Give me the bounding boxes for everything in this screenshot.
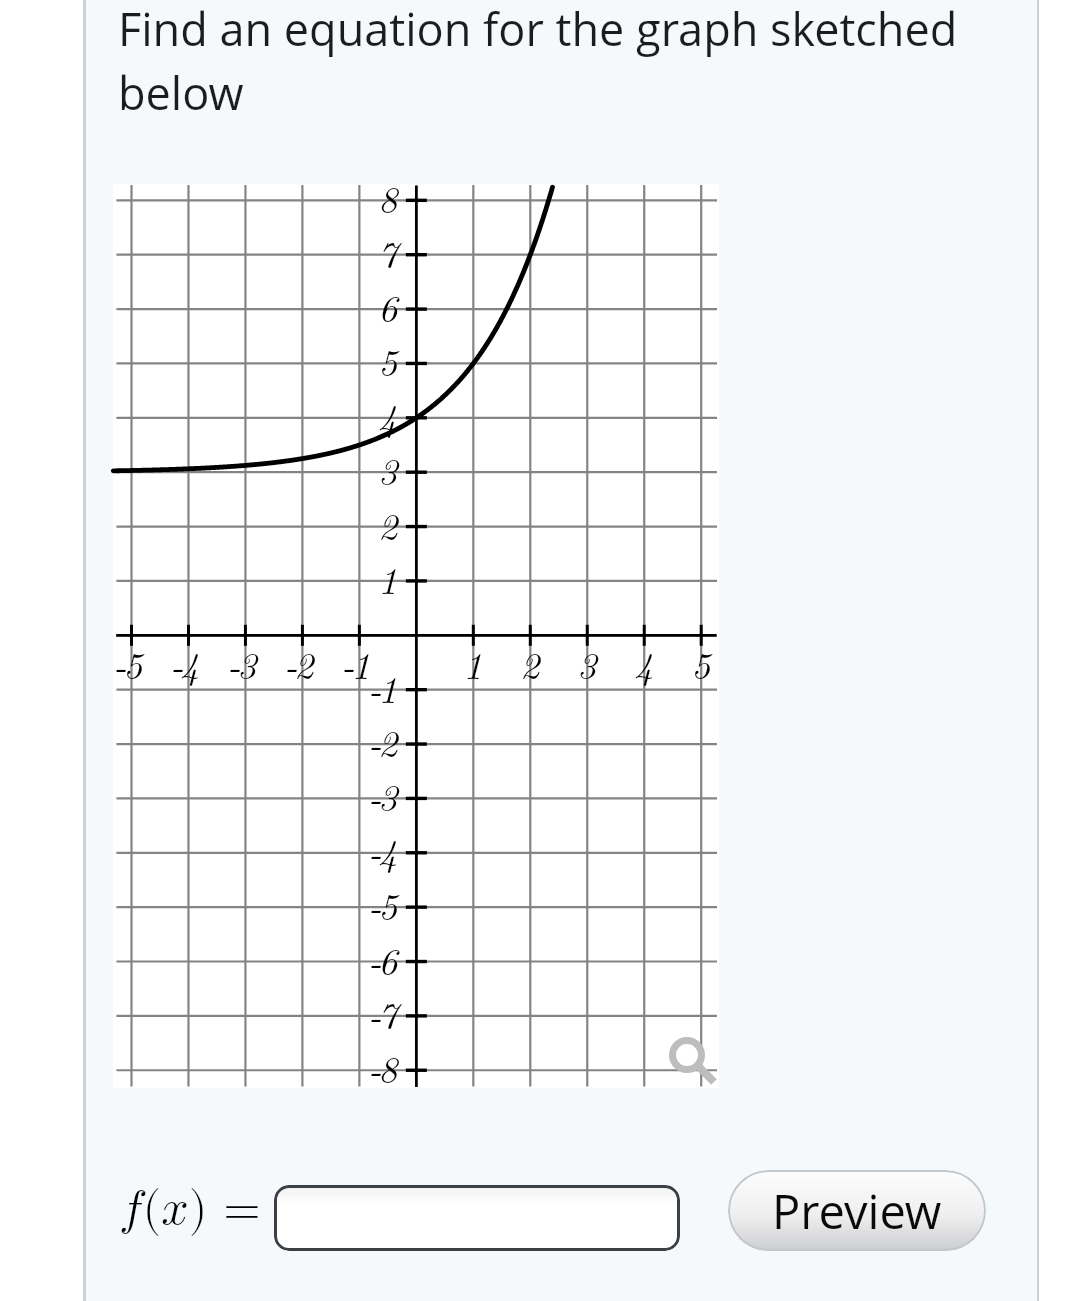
staticText: Find an equation for the graph sketched … [118, 0, 963, 123]
staticText: 7 [304, 225, 394, 279]
staticText: -5 [304, 877, 394, 931]
staticText: 4 [597, 636, 687, 690]
staticText: 1 [304, 551, 394, 605]
button[interactable]: Zoom graph [657, 1025, 717, 1085]
staticText: -4 [138, 636, 228, 690]
staticText: 5 [304, 333, 394, 387]
staticText: 1 [426, 636, 516, 690]
staticText: -4 [304, 823, 394, 877]
staticText: -3 [304, 768, 394, 822]
staticText: 2 [483, 636, 573, 690]
button[interactable] [274, 1185, 680, 1251]
staticText: 8 [304, 170, 394, 224]
staticText: -8 [304, 1040, 394, 1094]
staticText: -7 [304, 986, 394, 1040]
staticText: 5 [654, 636, 744, 690]
staticText: 4 [304, 388, 394, 442]
staticText: 2 [304, 497, 394, 551]
button[interactable]: Preview [728, 1170, 986, 1251]
staticText: 6 [304, 279, 394, 333]
staticText: Preview [772, 1179, 942, 1243]
staticText: -1 [309, 636, 399, 690]
staticText: -2 [304, 714, 394, 768]
staticText: -1 [304, 660, 394, 714]
staticText: 3 [540, 636, 630, 690]
staticText: -3 [195, 636, 285, 690]
staticText: -6 [304, 932, 394, 986]
staticText: 3 [304, 442, 394, 496]
staticText: -5 [81, 636, 171, 690]
staticText: 𝑓(𝑥) = [119, 1185, 261, 1233]
staticText: -2 [252, 636, 342, 690]
